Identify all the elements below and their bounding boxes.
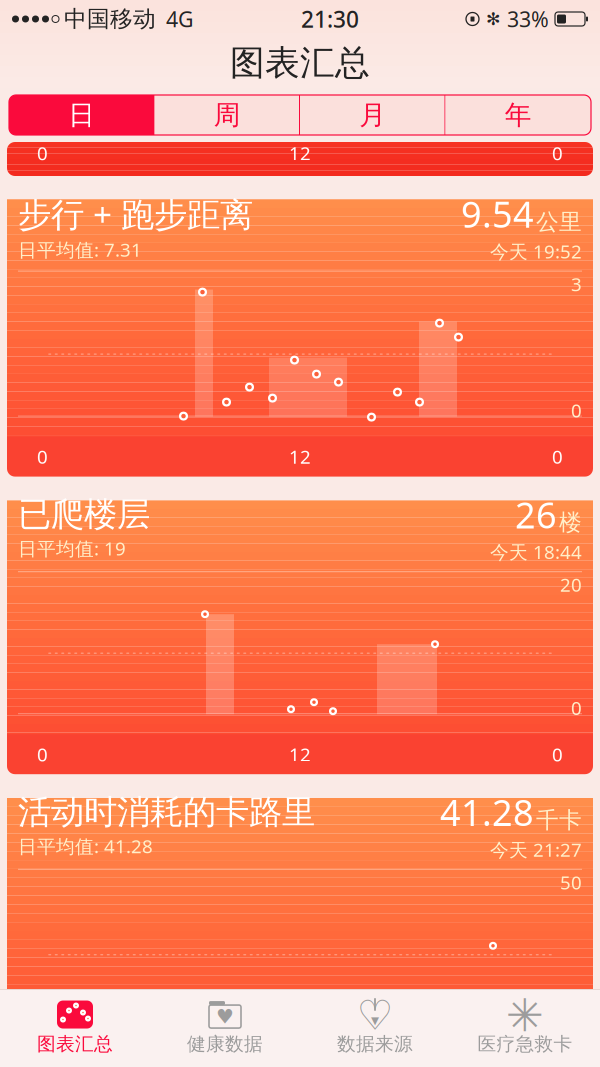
staticText: 0 <box>552 141 563 165</box>
staticText: 4G <box>166 5 194 33</box>
staticText: 日平均值: 41.28 <box>18 834 153 858</box>
staticText: 月 <box>359 99 386 131</box>
staticText: ♥ <box>216 1005 234 1028</box>
staticText: 公里 <box>536 208 582 236</box>
button[interactable]: ♥ <box>150 992 300 1064</box>
staticText: 0 <box>552 1047 563 1067</box>
button[interactable]: 年 <box>445 95 591 135</box>
staticText: 日 <box>68 99 95 131</box>
staticText: 活动时消耗的卡路里 <box>18 792 315 832</box>
staticText: 年 <box>505 99 532 131</box>
staticText: 医疗急救卡 <box>477 1032 572 1055</box>
staticText: 0 <box>552 742 563 767</box>
staticText: 步行 + 跑步距离 <box>18 192 253 236</box>
staticText: 周 <box>214 99 241 131</box>
staticText: 0 <box>37 444 48 469</box>
button[interactable]: 图表汇总 <box>0 38 600 88</box>
staticText: 日平均值: 7.31 <box>18 237 142 262</box>
button[interactable]: 活动时消耗的卡路里 <box>7 782 593 1067</box>
staticText: 3 <box>571 272 582 296</box>
staticText: 千卡 <box>536 806 582 834</box>
button[interactable]: ♡ <box>300 992 450 1064</box>
staticText: 0 <box>571 695 582 720</box>
staticText: 33% <box>507 5 549 33</box>
staticText: 12 <box>289 444 311 469</box>
staticText: 健康数据 <box>187 1032 263 1055</box>
staticText: 数据来源 <box>337 1032 413 1055</box>
staticText: 已爬楼层 <box>18 494 150 535</box>
staticText: 今天 21:27 <box>490 837 582 862</box>
staticText: 20 <box>560 572 582 597</box>
staticText: 图表汇总 <box>230 42 370 84</box>
staticText: 9.54 <box>461 190 534 238</box>
button[interactable]: 日 <box>9 95 154 135</box>
staticText: 0 <box>37 742 48 767</box>
button[interactable]: 月 <box>300 95 445 135</box>
button[interactable]: ✳ <box>450 992 600 1064</box>
staticText: 图表汇总 <box>37 1032 113 1055</box>
staticText: 中国移动 <box>64 5 156 33</box>
staticText: ✻ <box>486 9 501 29</box>
staticText: 12 <box>289 742 311 767</box>
staticText: 0 <box>37 141 48 165</box>
staticText: 楼 <box>559 509 582 536</box>
button[interactable]: 步行 + 跑步距离 <box>7 184 593 477</box>
button[interactable]: 周 <box>154 95 300 135</box>
staticText: 今天 18:44 <box>490 539 582 564</box>
staticText: ▾ <box>371 1011 379 1029</box>
staticText: 12 <box>289 141 311 165</box>
button[interactable]: 图表汇总 <box>0 992 150 1064</box>
staticText: 41.28 <box>440 788 534 836</box>
staticText: ✳ <box>506 990 544 1041</box>
staticText: 今天 19:52 <box>490 239 582 264</box>
staticText: ♡ <box>356 992 393 1039</box>
staticText: 26 <box>515 491 557 538</box>
staticText: 0 <box>37 1047 48 1067</box>
staticText: 日平均值: 19 <box>18 536 126 561</box>
staticText: 21:30 <box>301 4 359 34</box>
staticText: 50 <box>560 870 582 895</box>
button[interactable]: 已爬楼层 <box>7 485 593 774</box>
staticText: 0 <box>552 444 563 469</box>
staticText: 0 <box>571 398 582 423</box>
